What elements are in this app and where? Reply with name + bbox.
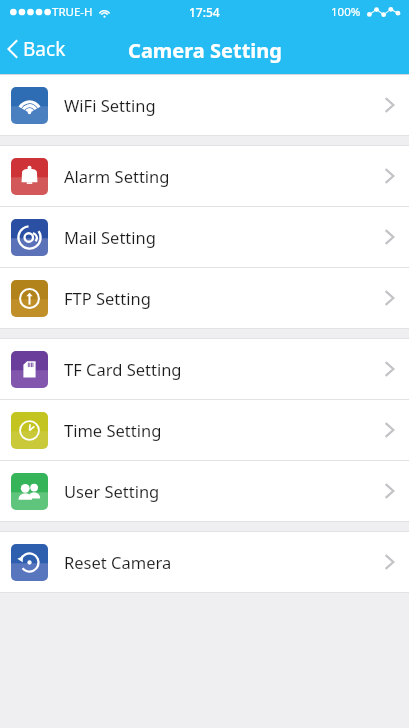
staticText: TRUE-H xyxy=(52,4,93,20)
staticText: Reset Camera xyxy=(64,551,172,573)
staticText: Mail Setting xyxy=(64,226,156,248)
button[interactable]: User Setting xyxy=(0,461,409,521)
staticText: 17:54 xyxy=(189,4,220,20)
staticText: Alarm Setting xyxy=(64,165,170,187)
staticText: Camera Setting xyxy=(128,37,282,64)
staticText: FTP Setting xyxy=(64,287,151,309)
staticText: User Setting xyxy=(64,480,160,502)
button[interactable]: FTP Setting xyxy=(0,268,409,328)
button[interactable]: Alarm Setting xyxy=(0,146,409,206)
button[interactable]: Mail Setting xyxy=(0,207,409,267)
staticText: 100% xyxy=(331,4,361,20)
staticText: WiFi Setting xyxy=(64,94,156,116)
staticText: TF Card Setting xyxy=(64,358,182,380)
staticText: Back xyxy=(23,36,66,62)
button[interactable]: TF Card Setting xyxy=(0,339,409,399)
staticText: Time Setting xyxy=(64,419,162,441)
button[interactable]: Time Setting xyxy=(0,400,409,460)
button[interactable]: WiFi Setting xyxy=(0,75,409,135)
button[interactable]: Back xyxy=(0,24,76,74)
button[interactable]: Reset Camera xyxy=(0,532,409,592)
